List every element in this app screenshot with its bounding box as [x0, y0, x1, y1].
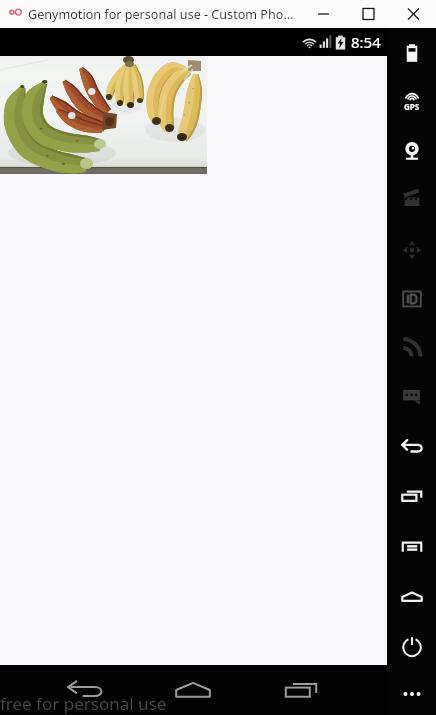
button[interactable]: Back [31, 665, 139, 715]
button[interactable]: Power [387, 621, 436, 670]
button[interactable]: Minimize [301, 0, 346, 28]
button[interactable]: Network [387, 323, 436, 372]
button[interactable]: Recent apps [247, 665, 355, 715]
button[interactable]: Home [387, 572, 436, 621]
button[interactable]: GPS [387, 77, 436, 126]
button[interactable]: More [387, 669, 436, 715]
staticText: GPS [404, 101, 420, 112]
button[interactable]: Menu [387, 522, 436, 571]
staticText: 8:54 [351, 32, 381, 52]
button[interactable]: Close [391, 0, 436, 28]
staticText: free for personal use [0, 692, 167, 715]
button[interactable]: Identifiers [387, 274, 436, 323]
button[interactable]: Back [387, 423, 436, 472]
button[interactable]: Battery [387, 28, 436, 77]
button[interactable]: Recent apps [387, 471, 436, 520]
button[interactable]: Accelerometer [387, 225, 436, 274]
button[interactable]: Video recording [387, 174, 436, 223]
button[interactable]: SMS [387, 371, 436, 420]
button[interactable]: Maximize [346, 0, 391, 28]
staticText: Genymotion for personal use - Custom Pho… [28, 6, 294, 23]
button[interactable]: Home [139, 665, 247, 715]
button[interactable]: Camera [387, 126, 436, 175]
